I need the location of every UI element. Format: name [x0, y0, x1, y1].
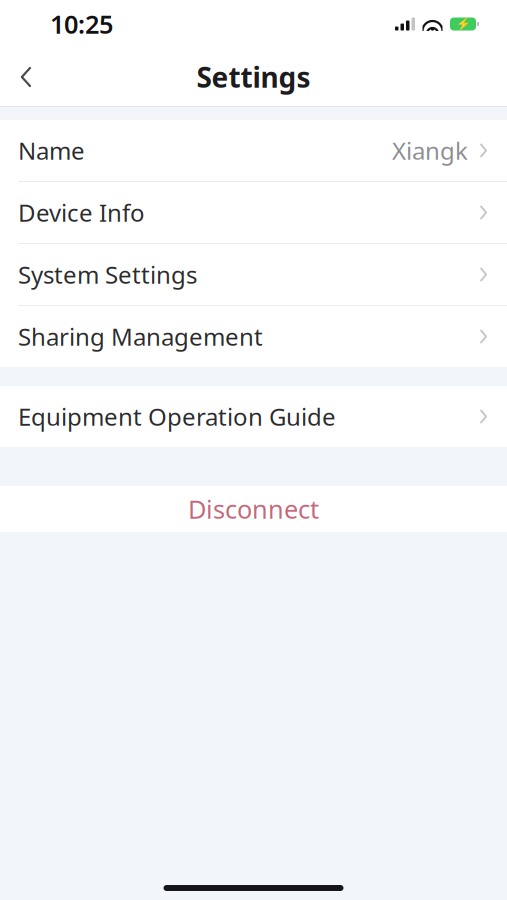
staticText: ⚡: [455, 17, 470, 31]
staticText: System Settings: [18, 259, 197, 290]
button[interactable]: System Settings: [0, 244, 507, 306]
button[interactable]: Disconnect: [0, 486, 507, 532]
staticText: Sharing Management: [18, 321, 263, 352]
staticText: Settings: [196, 58, 310, 96]
staticText: Xiangk: [392, 135, 468, 166]
staticText: 10:25: [50, 7, 113, 41]
button[interactable]: Back: [0, 54, 52, 100]
staticText: Name: [18, 135, 85, 166]
staticText: Disconnect: [188, 492, 319, 526]
staticText: Equipment Operation Guide: [18, 401, 336, 432]
button[interactable]: Device Info: [0, 182, 507, 244]
staticText: Device Info: [18, 197, 145, 228]
button[interactable]: Name: [0, 120, 507, 182]
button[interactable]: Equipment Operation Guide: [0, 386, 507, 447]
button[interactable]: Sharing Management: [0, 306, 507, 367]
